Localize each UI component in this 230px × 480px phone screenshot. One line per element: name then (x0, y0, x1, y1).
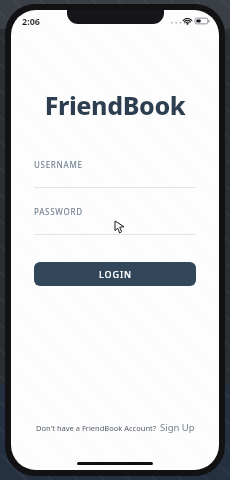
button[interactable]: Sign Up (160, 421, 195, 434)
button[interactable]: USERNAME (34, 159, 196, 188)
staticText: Don't have a FriendBook Account? (36, 423, 156, 433)
staticText: LOGIN (99, 268, 132, 280)
staticText: PASSWORD (34, 206, 83, 217)
staticText: USERNAME (34, 159, 83, 170)
button[interactable]: PASSWORD (34, 206, 196, 235)
staticText: FriendBook (11, 88, 219, 122)
staticText: Sign Up (160, 421, 195, 434)
button[interactable]: LOGIN (34, 262, 196, 286)
staticText: 2:06 (22, 15, 40, 27)
